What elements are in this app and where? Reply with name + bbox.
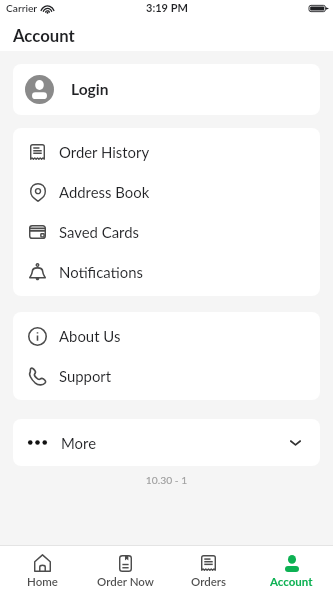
button[interactable]: Login — [13, 64, 320, 115]
staticText: Home — [27, 575, 58, 589]
button[interactable]: About Us — [13, 316, 320, 356]
button[interactable]: Account — [250, 546, 333, 592]
staticText: Account — [13, 26, 75, 46]
button[interactable]: Notifications — [13, 252, 320, 292]
button[interactable]: Order History — [13, 132, 320, 172]
button[interactable]: Order Now — [84, 546, 167, 592]
staticText: Orders — [191, 575, 227, 589]
staticText: Account — [270, 575, 313, 589]
staticText: 3:19 PM — [146, 1, 188, 14]
button[interactable]: More — [13, 419, 320, 466]
staticText: Order History — [59, 143, 150, 161]
button[interactable]: Home — [0, 546, 84, 592]
staticText: Support — [59, 367, 112, 385]
staticText: Order Now — [97, 575, 154, 589]
staticText: Carrier — [6, 2, 38, 14]
staticText: Address Book — [59, 183, 150, 201]
button[interactable]: Saved Cards — [13, 212, 320, 252]
button[interactable]: Address Book — [13, 172, 320, 212]
staticText: Notifications — [59, 263, 143, 281]
staticText: 10.30 - 1 — [0, 474, 333, 486]
button[interactable]: Support — [13, 356, 320, 396]
staticText: More — [61, 434, 97, 452]
staticText: Saved Cards — [59, 223, 139, 241]
staticText: Login — [71, 80, 109, 99]
button[interactable]: Orders — [167, 546, 250, 592]
staticText: About Us — [59, 327, 121, 345]
